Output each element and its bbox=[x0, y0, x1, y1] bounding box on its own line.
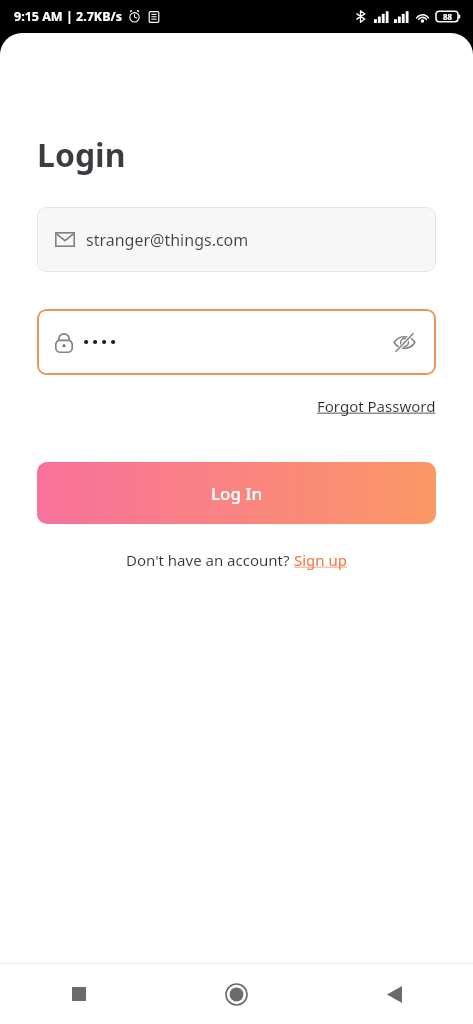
staticText: Login bbox=[37, 133, 126, 177]
button[interactable]: Home bbox=[157, 964, 315, 1024]
button[interactable]: Sign up bbox=[294, 550, 347, 570]
button[interactable]: Show password bbox=[389, 327, 419, 357]
staticText: 9:15 AM | 2.7KB/s bbox=[14, 8, 122, 25]
button[interactable]: Show password bbox=[37, 309, 436, 375]
staticText: stranger@things.com bbox=[86, 229, 249, 251]
staticText: Sign up bbox=[294, 550, 347, 570]
button[interactable]: Forgot Password bbox=[317, 396, 436, 416]
staticText: Don't have an account? bbox=[126, 550, 294, 570]
button[interactable]: stranger@things.com bbox=[37, 207, 436, 272]
staticText: Log In bbox=[211, 482, 263, 505]
button[interactable]: Back bbox=[315, 964, 473, 1024]
button[interactable]: Recents bbox=[0, 964, 157, 1024]
staticText: Forgot Password bbox=[317, 396, 436, 416]
staticText: 88 bbox=[443, 11, 453, 22]
button[interactable]: Log In bbox=[37, 462, 436, 524]
